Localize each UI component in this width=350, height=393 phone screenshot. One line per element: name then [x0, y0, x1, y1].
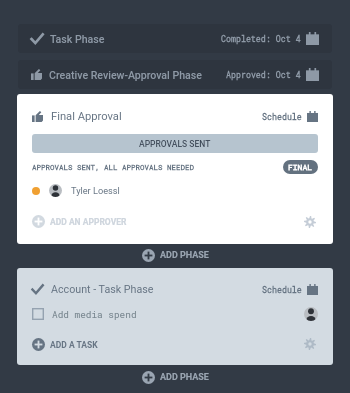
button[interactable]: Task Phase: [18, 24, 332, 53]
staticText: Add media spend: [52, 308, 137, 320]
button[interactable]: Settings: [304, 216, 318, 228]
staticText: APPROVALS SENT: [139, 139, 211, 149]
staticText: ADD AN APPROVER: [50, 217, 127, 227]
staticText: ADD PHASE: [160, 372, 209, 383]
staticText: Task Phase: [50, 33, 105, 45]
button[interactable]: Creative Review-Approval Phase: [18, 60, 332, 89]
button[interactable]: Settings: [304, 338, 318, 350]
staticText: Account - Task Phase: [51, 283, 154, 296]
staticText: Completed: Oct 4: [221, 33, 301, 44]
button[interactable]: ADD PHASE: [18, 367, 332, 388]
staticText: Creative Review-Approval Phase: [49, 69, 202, 81]
button[interactable]: ADD AN APPROVER: [32, 215, 127, 228]
staticText: FINAL: [288, 162, 313, 173]
staticText: Final Approval: [51, 110, 122, 123]
staticText: Approved: Oct 4: [226, 69, 301, 80]
button[interactable]: APPROVALS SENT: [32, 134, 318, 153]
staticText: ADD A TASK: [50, 340, 98, 350]
button[interactable]: ADD PHASE: [18, 245, 332, 266]
button[interactable]: ADD A TASK: [32, 338, 98, 351]
staticText: APPROVALS SENT, ALL APPROVALS NEEDED: [32, 162, 195, 172]
staticText: Schedule: [262, 111, 302, 122]
staticText: Tyler Loessl: [71, 185, 120, 196]
staticText: Schedule: [262, 284, 302, 295]
staticText: ADD PHASE: [160, 250, 209, 261]
